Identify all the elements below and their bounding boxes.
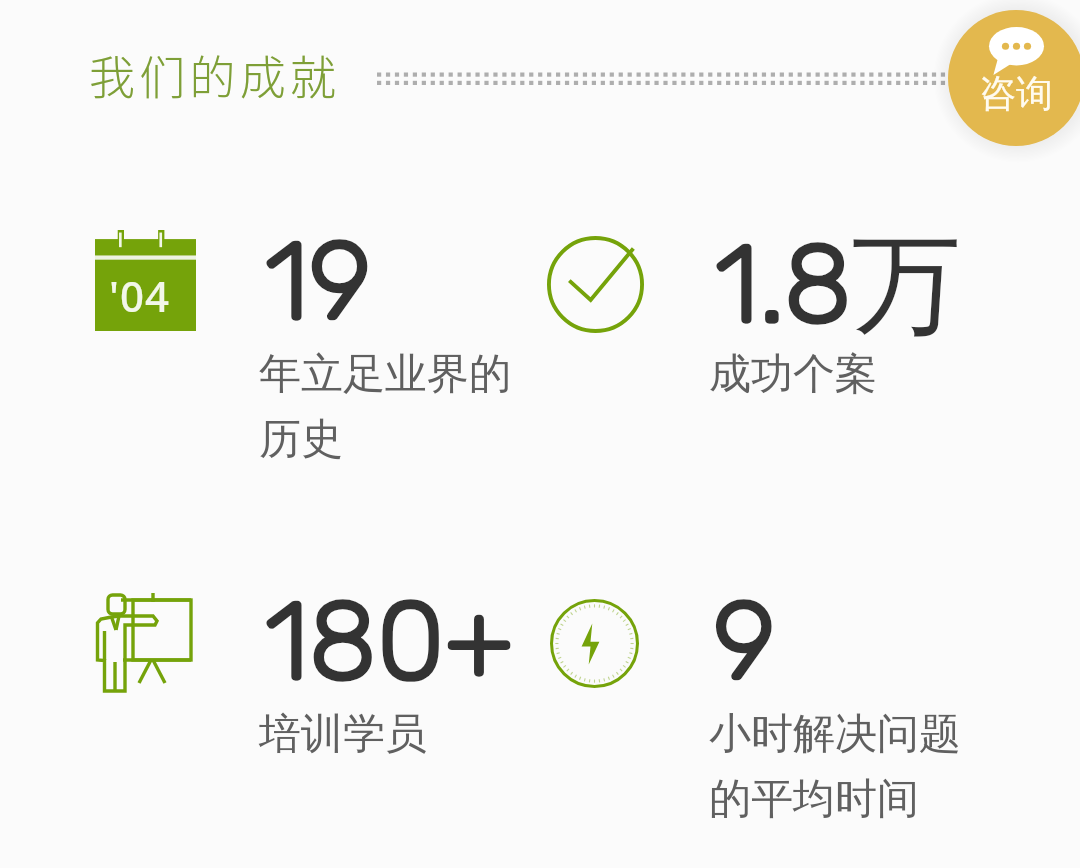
staticText: 180+: [265, 576, 514, 706]
staticText: 小时解决问题 的平均时间: [709, 708, 961, 825]
button[interactable]: 咨询: [948, 10, 1080, 146]
staticText: 咨询: [979, 70, 1053, 117]
staticText: 9: [713, 576, 776, 706]
staticText: 年立足业界的 历史: [259, 348, 511, 465]
staticText: '04: [109, 267, 171, 324]
staticText: 我们的成就: [87, 41, 338, 108]
staticText: 1.8万: [715, 216, 962, 355]
staticText: 培训学员: [259, 708, 427, 761]
staticText: 成功个案: [709, 348, 877, 401]
staticText: 19: [265, 216, 372, 346]
